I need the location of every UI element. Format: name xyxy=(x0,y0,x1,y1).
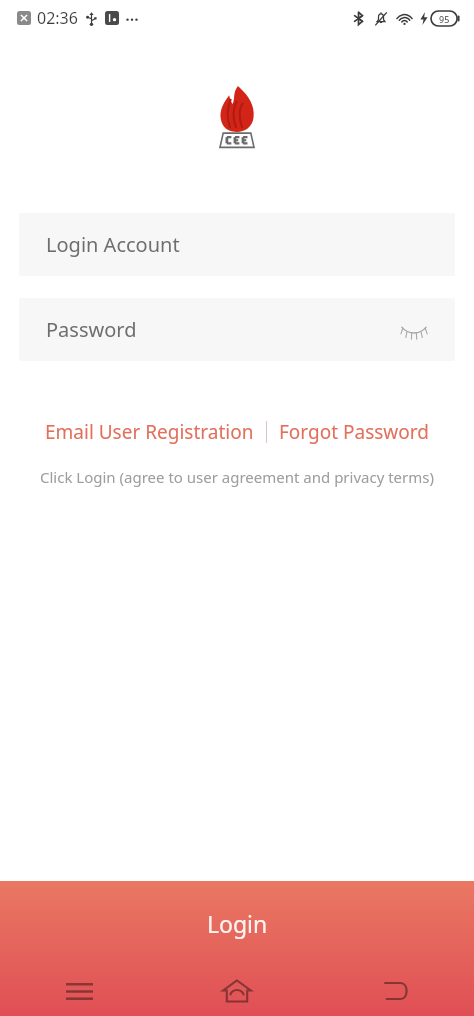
button[interactable]: Recent apps xyxy=(0,966,158,1016)
staticText: Password xyxy=(46,316,137,343)
staticText: Email User Registration xyxy=(45,419,254,445)
button[interactable]: Back xyxy=(316,966,474,1016)
button[interactable]: Email User Registration xyxy=(45,419,254,445)
button[interactable]: Forgot Password xyxy=(279,419,429,445)
staticText: 02:36 xyxy=(37,7,78,29)
button[interactable]: Show password xyxy=(397,313,431,347)
staticText: Forgot Password xyxy=(279,419,429,445)
button[interactable]: Home xyxy=(158,966,316,1016)
button[interactable]: Login xyxy=(0,881,474,1016)
button[interactable]: Login Account xyxy=(19,213,455,276)
button[interactable]: Password xyxy=(19,298,455,361)
staticText: 95 xyxy=(439,13,450,25)
staticText: Login xyxy=(207,908,268,939)
staticText: Login Account xyxy=(46,231,180,258)
staticText: Click Login (agree to user agreement and… xyxy=(0,467,474,487)
